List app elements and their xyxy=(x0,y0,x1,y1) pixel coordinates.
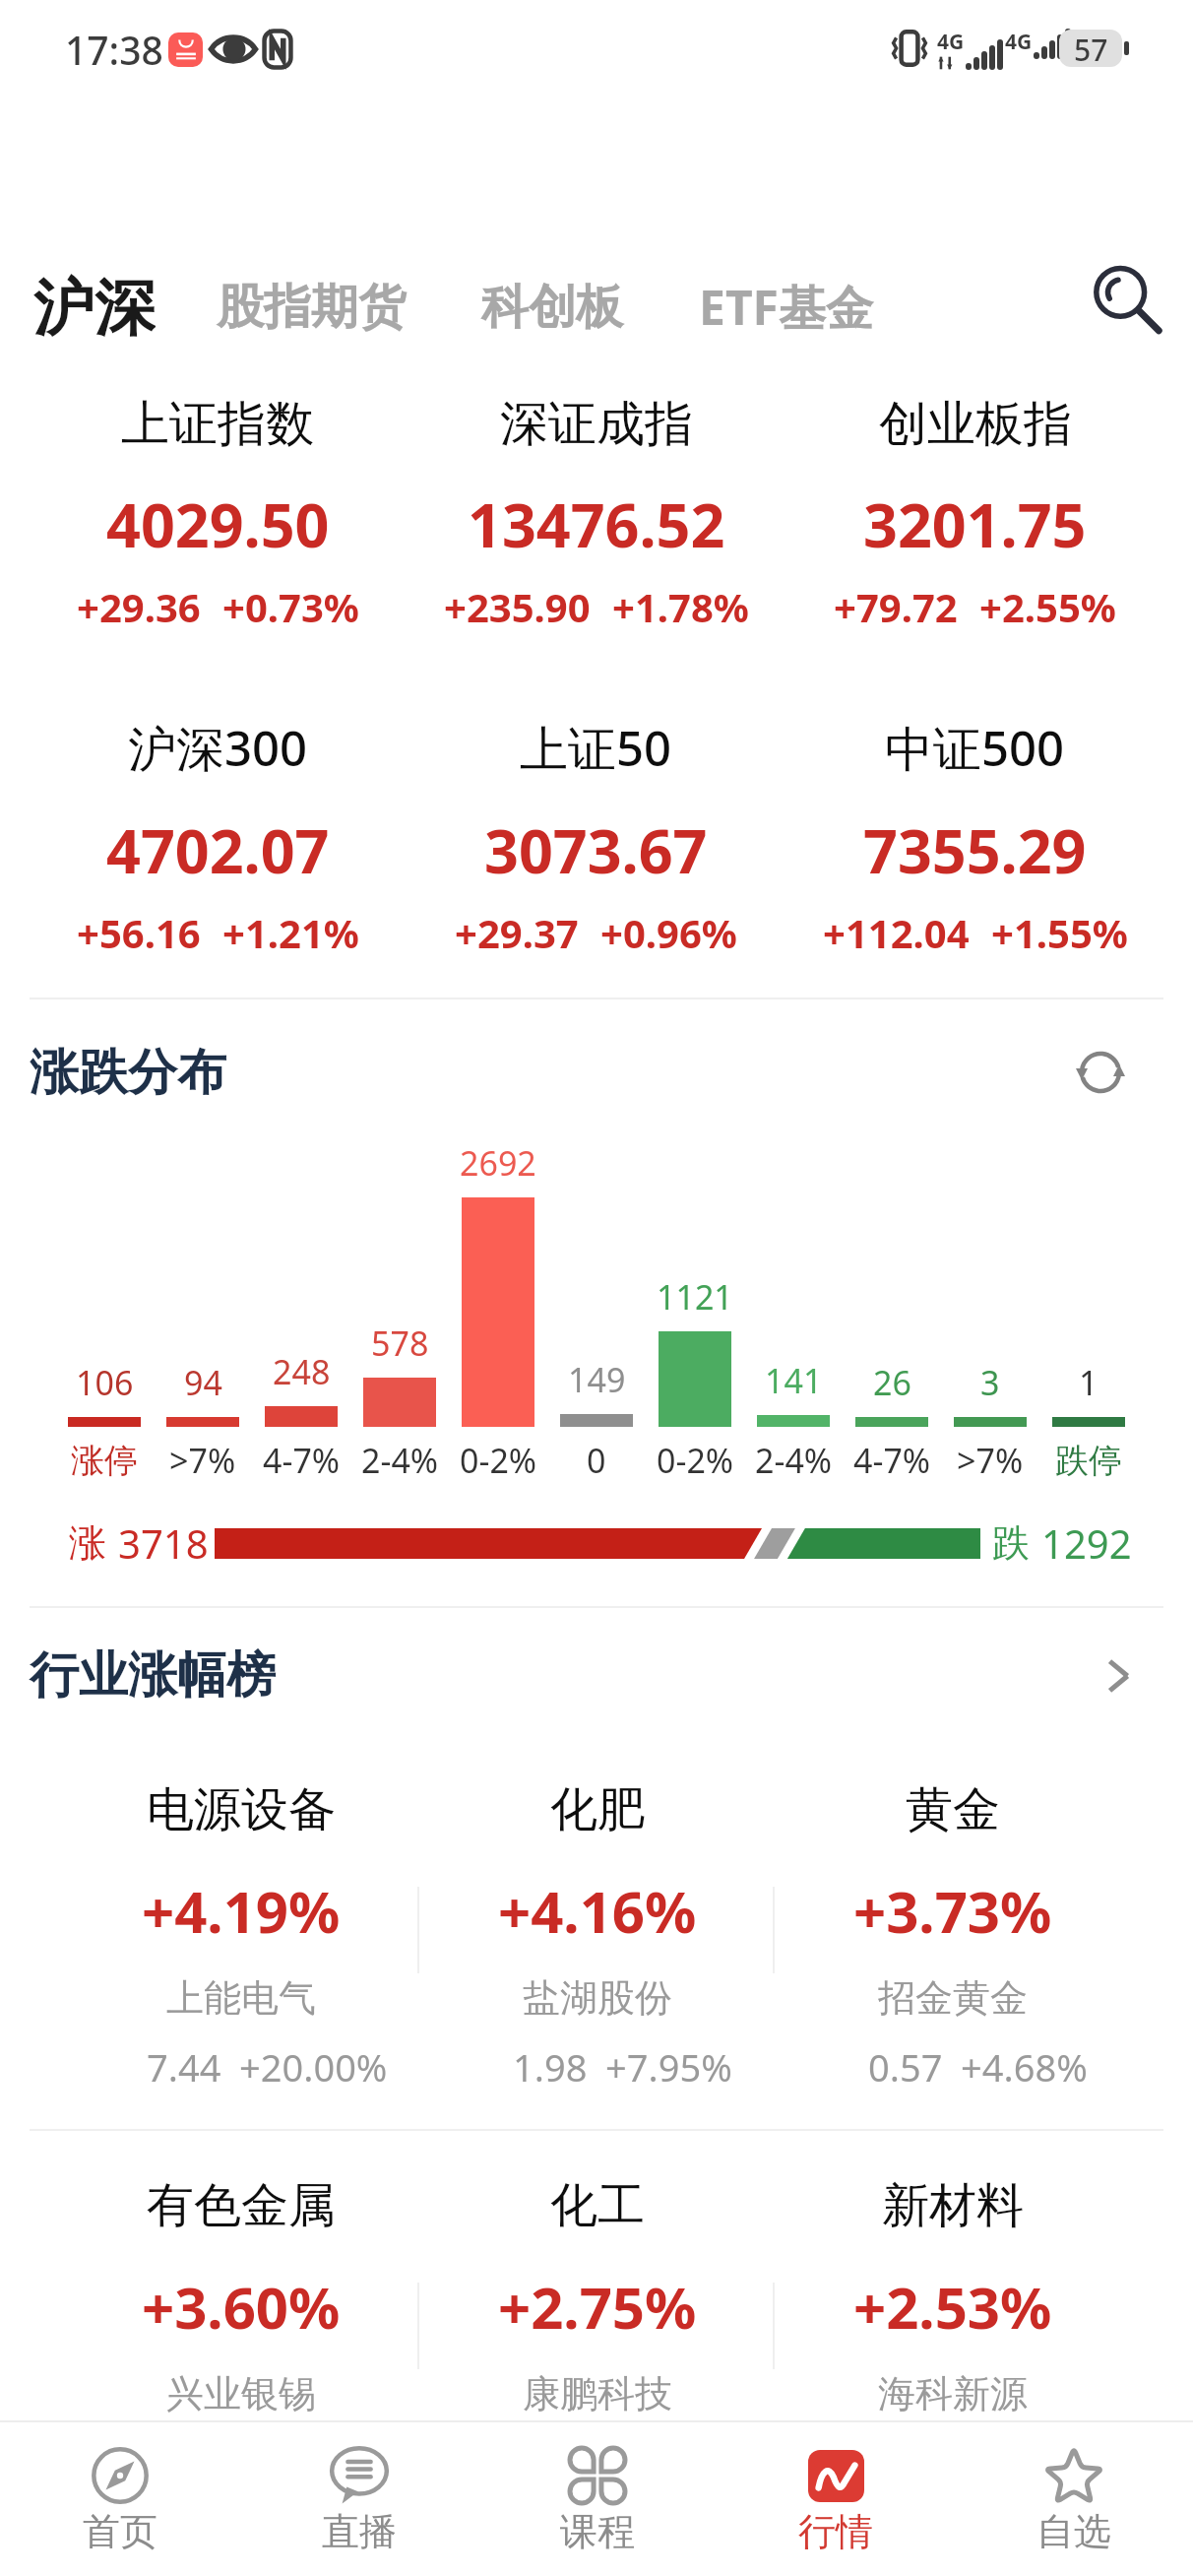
staticText: 行业涨幅榜 xyxy=(30,1644,276,1707)
button[interactable]: 沪深300 xyxy=(29,715,407,977)
button[interactable]: 有色金属 xyxy=(63,2178,419,2424)
button[interactable]: Search xyxy=(1081,255,1169,344)
staticText: 106 xyxy=(76,1360,134,1405)
staticText: >7% xyxy=(169,1438,236,1483)
button[interactable]: 行情 xyxy=(717,2422,955,2576)
staticText: 中证500 xyxy=(885,715,1065,781)
button[interactable]: 直播 xyxy=(239,2422,478,2576)
staticText: 有色金属 xyxy=(147,2176,336,2235)
staticText: 3718 xyxy=(118,1516,209,1570)
staticText: +3.73% xyxy=(853,1872,1052,1950)
staticText: 黄金 xyxy=(906,1780,1000,1839)
staticText: +0.96% xyxy=(600,906,737,959)
staticText: +4.16% xyxy=(498,1872,697,1950)
button[interactable]: ETF基金 xyxy=(697,263,875,352)
staticText: 兴业银锡 xyxy=(166,2370,316,2417)
staticText: +4.19% xyxy=(142,1872,341,1950)
staticText: 深证成指 xyxy=(500,394,693,455)
staticText: 首页 xyxy=(83,2508,157,2555)
staticText: 涨跌分布 xyxy=(30,1042,226,1104)
staticText: 3201.75 xyxy=(863,483,1087,565)
staticText: +56.16 xyxy=(77,906,201,959)
staticText: 4-7% xyxy=(853,1438,931,1483)
staticText: 化肥 xyxy=(550,1780,645,1839)
button[interactable]: 新材料 xyxy=(775,2178,1130,2424)
staticText: 上证50 xyxy=(520,715,672,781)
staticText: 26 xyxy=(873,1360,911,1405)
button[interactable]: 化肥 xyxy=(419,1782,775,2107)
staticText: 248 xyxy=(273,1349,331,1394)
staticText: 0 xyxy=(587,1438,606,1483)
staticText: 自选 xyxy=(1036,2508,1111,2555)
staticText: +1.21% xyxy=(222,906,359,959)
staticText: 创业板指 xyxy=(879,394,1072,455)
staticText: 2-4% xyxy=(755,1438,833,1483)
staticText: +0.73% xyxy=(222,580,359,633)
staticText: 578 xyxy=(371,1320,429,1366)
staticText: 4029.50 xyxy=(106,483,330,565)
staticText: 3 xyxy=(980,1360,1000,1405)
button[interactable]: 课程 xyxy=(478,2422,717,2576)
staticText: 4G xyxy=(937,28,965,56)
staticText: +2.75% xyxy=(498,2268,697,2346)
staticText: 行情 xyxy=(798,2508,873,2555)
staticText: 7.44 xyxy=(147,2041,221,2093)
staticText: +112.04 xyxy=(823,906,970,959)
staticText: 新材料 xyxy=(882,2176,1024,2235)
staticText: 57 xyxy=(1074,30,1108,67)
staticText: +7.95% xyxy=(605,2041,732,2093)
staticText: +3.60% xyxy=(142,2268,341,2346)
staticText: 直播 xyxy=(322,2508,397,2555)
staticText: 3073.67 xyxy=(484,809,708,891)
staticText: 海科新源 xyxy=(878,2370,1028,2417)
staticText: +2.53% xyxy=(853,2268,1052,2346)
staticText: 康鹏科技 xyxy=(523,2370,672,2417)
staticText: +20.00% xyxy=(239,2041,388,2093)
staticText: 0-2% xyxy=(657,1438,734,1483)
button[interactable]: 上证指数 xyxy=(29,394,407,651)
button[interactable]: 自选 xyxy=(955,2422,1193,2576)
staticText: 上证指数 xyxy=(121,394,314,455)
staticText: +1.55% xyxy=(991,906,1128,959)
button[interactable]: 深证成指 xyxy=(407,394,785,651)
button[interactable]: 化工 xyxy=(419,2178,775,2424)
button[interactable]: 科创板 xyxy=(479,266,625,349)
staticText: 股指期货 xyxy=(217,278,406,337)
button[interactable]: 电源设备 xyxy=(63,1782,419,2107)
staticText: 电源设备 xyxy=(147,1780,336,1839)
button[interactable]: 股指期货 xyxy=(215,266,408,349)
button[interactable]: Refresh xyxy=(1064,1036,1137,1109)
staticText: 化工 xyxy=(550,2176,645,2235)
staticText: 2-4% xyxy=(361,1438,439,1483)
staticText: 沪深 xyxy=(33,270,156,345)
staticText: +4.68% xyxy=(961,2041,1088,2093)
button[interactable]: 中证500 xyxy=(785,715,1164,977)
staticText: +79.72 xyxy=(834,580,958,633)
staticText: 17:38 xyxy=(65,24,163,76)
staticText: 94 xyxy=(184,1360,222,1405)
staticText: 盐湖股份 xyxy=(523,1974,672,2022)
staticText: 141 xyxy=(765,1358,823,1403)
button[interactable]: 首页 xyxy=(0,2422,239,2576)
button[interactable]: 黄金 xyxy=(775,1782,1130,2107)
staticText: 0-2% xyxy=(460,1438,537,1483)
staticText: 上能电气 xyxy=(166,1974,316,2022)
staticText: 7355.29 xyxy=(863,809,1087,891)
staticText: 跌停 xyxy=(1055,1440,1122,1482)
staticText: 2692 xyxy=(460,1140,536,1186)
staticText: 1292 xyxy=(1041,1516,1132,1570)
button[interactable]: 沪深 xyxy=(31,258,157,356)
staticText: 跌 xyxy=(992,1519,1030,1567)
staticText: 4-7% xyxy=(263,1438,341,1483)
staticText: 1 xyxy=(1079,1360,1099,1405)
button[interactable]: 上证50 xyxy=(407,715,785,977)
staticText: 科创板 xyxy=(481,278,623,337)
staticText: 涨 xyxy=(69,1519,106,1567)
staticText: +2.55% xyxy=(979,580,1116,633)
staticText: 149 xyxy=(568,1357,626,1402)
button[interactable]: 创业板指 xyxy=(785,394,1164,651)
button[interactable]: 行业涨幅榜 xyxy=(30,1644,1163,1707)
staticText: +29.37 xyxy=(455,906,579,959)
staticText: 沪深300 xyxy=(128,715,308,781)
staticText: 1121 xyxy=(657,1274,733,1320)
